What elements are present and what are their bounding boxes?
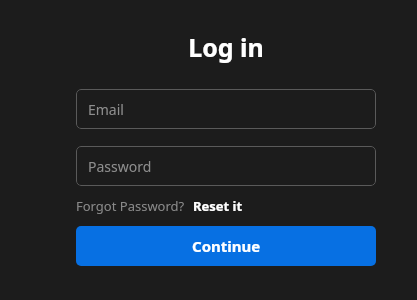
button[interactable]: Continue bbox=[76, 226, 376, 266]
staticText: Email bbox=[88, 100, 124, 119]
button[interactable]: Password bbox=[76, 146, 376, 186]
button[interactable]: Reset it bbox=[193, 197, 243, 215]
button[interactable]: Email bbox=[76, 89, 376, 129]
staticText: Password bbox=[88, 157, 152, 176]
staticText: Reset it bbox=[193, 197, 243, 215]
staticText: Log in bbox=[76, 30, 376, 64]
staticText: Forgot Password? bbox=[76, 197, 185, 215]
staticText: Continue bbox=[192, 236, 261, 256]
